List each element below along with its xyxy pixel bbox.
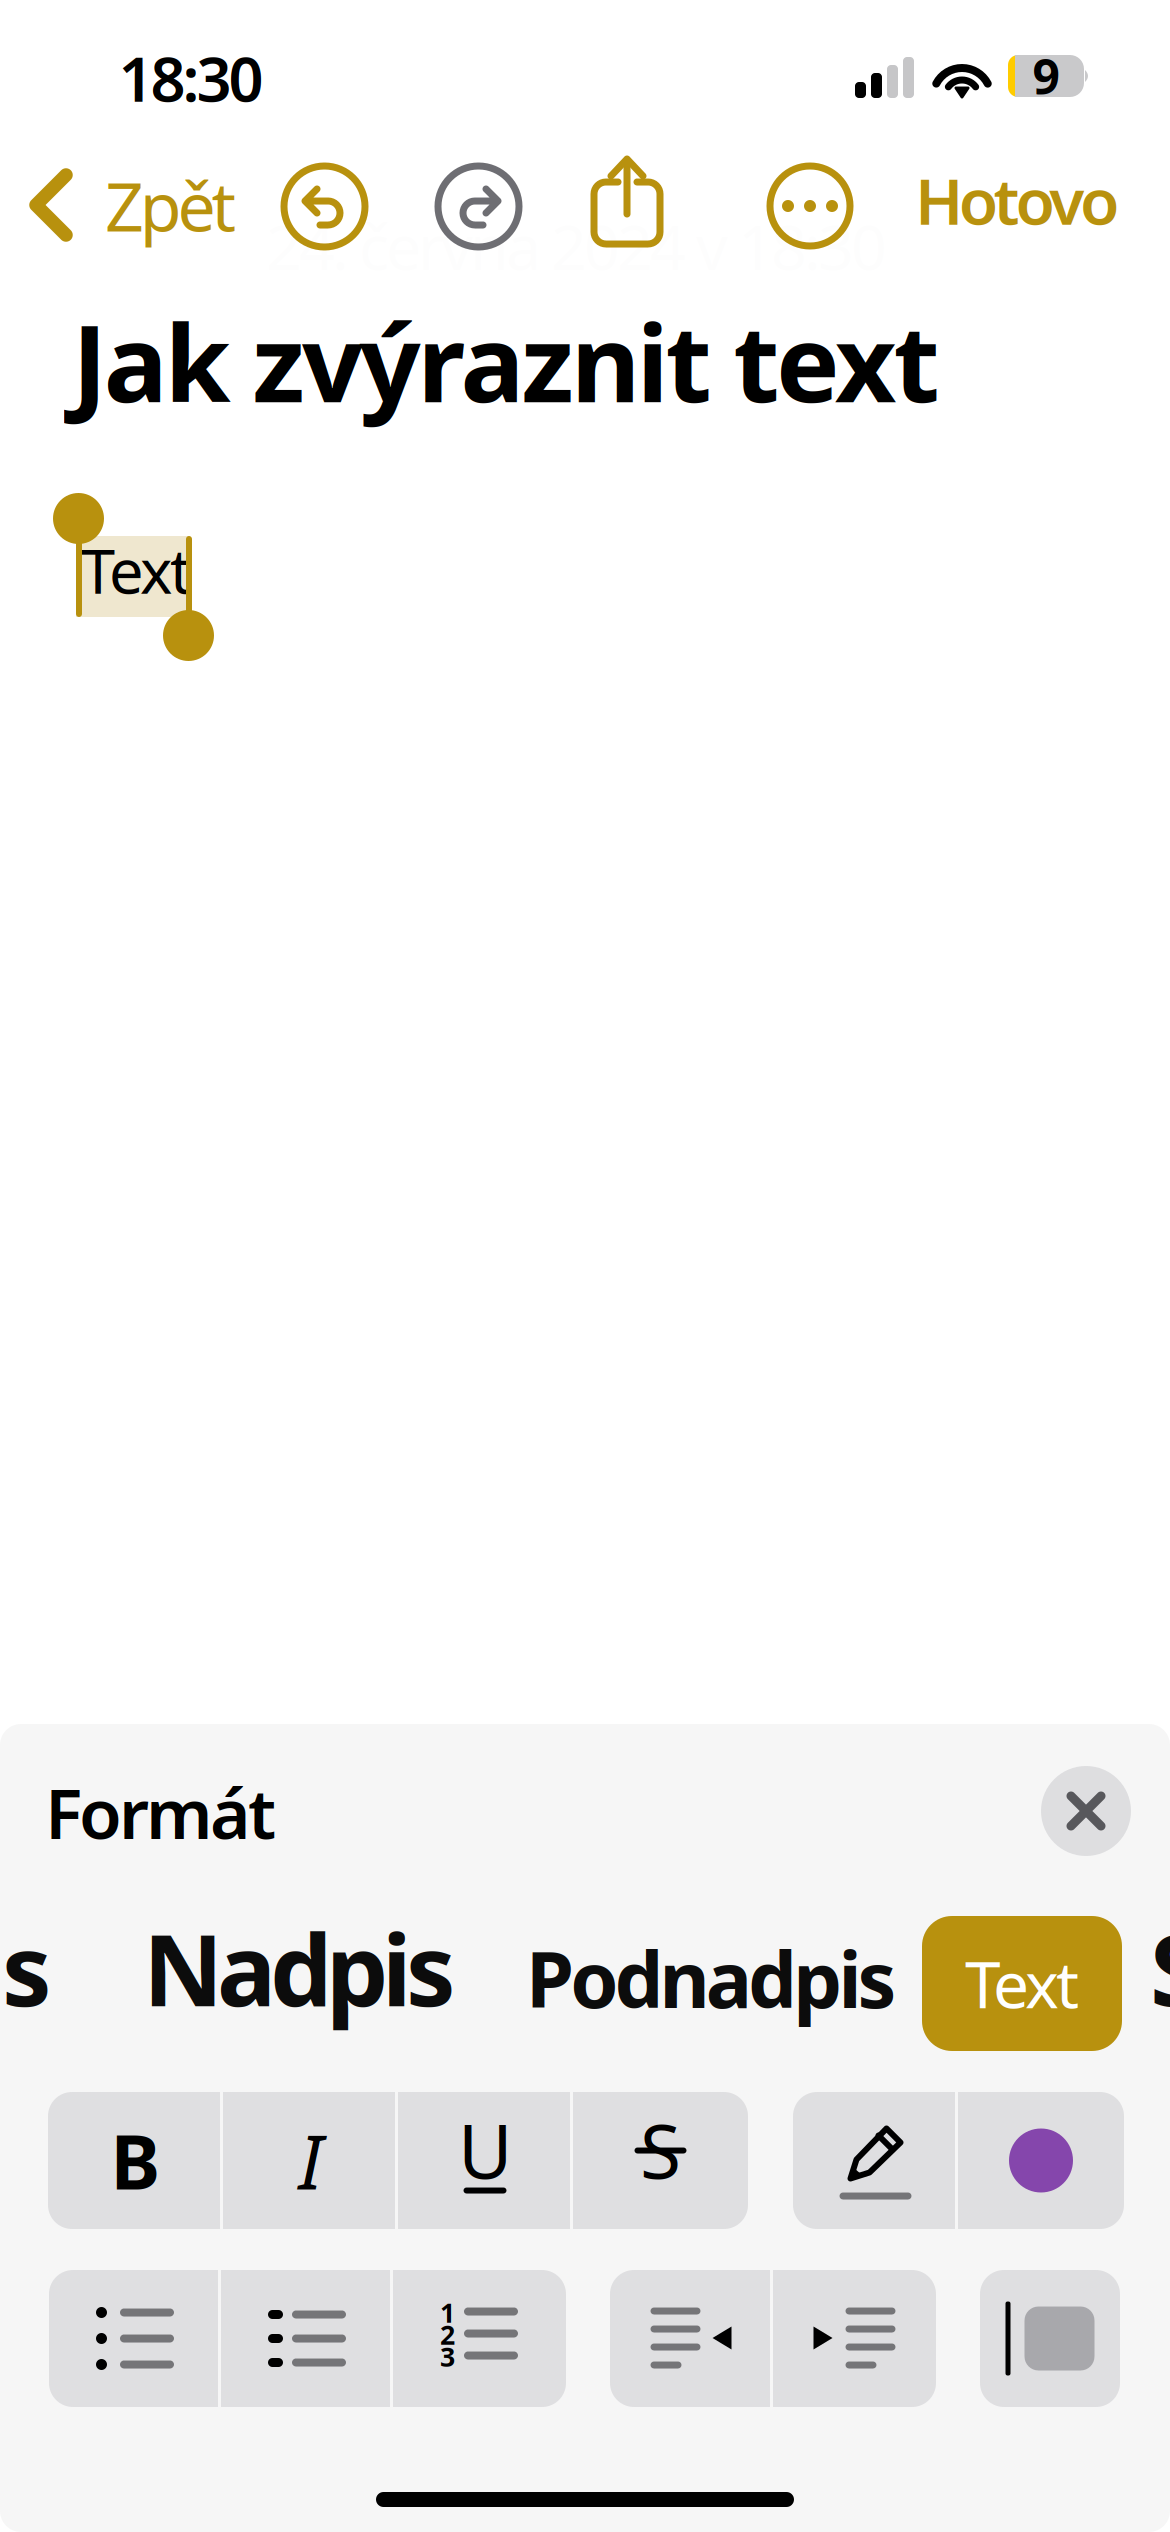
staticText: S xyxy=(1150,1902,1170,2033)
button[interactable]: Bold xyxy=(48,2092,223,2229)
staticText: Formát xyxy=(45,1766,276,1858)
staticText: U xyxy=(458,2100,513,2199)
staticText: B xyxy=(110,2111,160,2210)
button[interactable]: Text xyxy=(922,1916,1122,2051)
staticText: 24. června 2024 v 18:30 xyxy=(266,204,887,287)
staticText: Podnadpis xyxy=(526,1927,897,2029)
staticText: 18:30 xyxy=(118,37,263,119)
button[interactable]: Redo xyxy=(438,166,519,247)
staticText: Nadpis xyxy=(143,1902,456,2033)
button[interactable]: More xyxy=(770,166,850,246)
button[interactable]: Podnadpis xyxy=(526,1923,916,2033)
button[interactable]: Underline xyxy=(398,2092,573,2229)
button[interactable]: Strikethrough xyxy=(573,2092,748,2229)
button[interactable]: S xyxy=(1150,1913,1170,2023)
staticText: Jak zvýraznit text xyxy=(72,290,940,432)
button[interactable]: Italic xyxy=(223,2092,398,2229)
staticText: 3 xyxy=(440,2339,455,2374)
button[interactable]: Attachment xyxy=(980,2270,1120,2407)
button[interactable]: Undo xyxy=(284,166,365,247)
staticText: Text xyxy=(965,1941,1079,2026)
button[interactable]: Zpět xyxy=(27,157,245,253)
button[interactable]: Outdent xyxy=(610,2270,773,2407)
staticText: 2 xyxy=(440,2317,455,2352)
button[interactable]: Bulleted list xyxy=(49,2270,221,2407)
staticText: s xyxy=(2,1902,52,2033)
staticText: 9 xyxy=(1032,44,1059,108)
button[interactable]: Hotovo xyxy=(915,152,1125,248)
button[interactable]: Close xyxy=(1041,1766,1131,1856)
button[interactable]: Share xyxy=(592,152,666,248)
button[interactable]: Indent xyxy=(773,2270,936,2407)
staticText: Zpět xyxy=(105,160,236,250)
staticText: I xyxy=(298,2111,322,2210)
staticText: Text xyxy=(81,529,192,611)
staticText: 1 xyxy=(440,2295,455,2330)
button[interactable]: Dashed list xyxy=(221,2270,393,2407)
button[interactable]: s xyxy=(2,1913,68,2023)
button[interactable]: Numbered list xyxy=(393,2270,566,2407)
staticText: Hotovo xyxy=(915,157,1119,242)
button[interactable]: Highlight xyxy=(793,2092,958,2229)
button[interactable]: Highlight colour xyxy=(958,2092,1124,2229)
staticText: S xyxy=(640,2100,681,2199)
button[interactable]: Nadpis xyxy=(143,1913,473,2023)
